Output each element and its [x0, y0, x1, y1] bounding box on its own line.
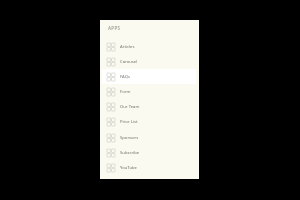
staticText: YouTube	[120, 165, 137, 171]
button[interactable]: Subscribe	[100, 145, 199, 160]
staticText: Subscribe	[120, 150, 140, 156]
staticText: Sponsors	[120, 135, 139, 141]
staticText: Price List	[120, 119, 138, 125]
button[interactable]: FAQs	[100, 69, 199, 84]
button[interactable]: YouTube	[100, 160, 199, 175]
button[interactable]: Price List	[100, 114, 199, 129]
button[interactable]: Our Team	[100, 99, 199, 114]
staticText: FAQs	[120, 74, 130, 80]
button[interactable]: Sponsors	[100, 130, 199, 145]
button[interactable]: Carousel	[100, 54, 199, 69]
button[interactable]: Form	[100, 84, 199, 99]
staticText: APPS	[108, 25, 121, 31]
button[interactable]: Articles	[100, 39, 199, 54]
staticText: Form	[120, 89, 131, 95]
staticText: Articles	[120, 44, 135, 50]
staticText: Carousel	[120, 59, 138, 65]
staticText: Our Team	[120, 104, 140, 110]
